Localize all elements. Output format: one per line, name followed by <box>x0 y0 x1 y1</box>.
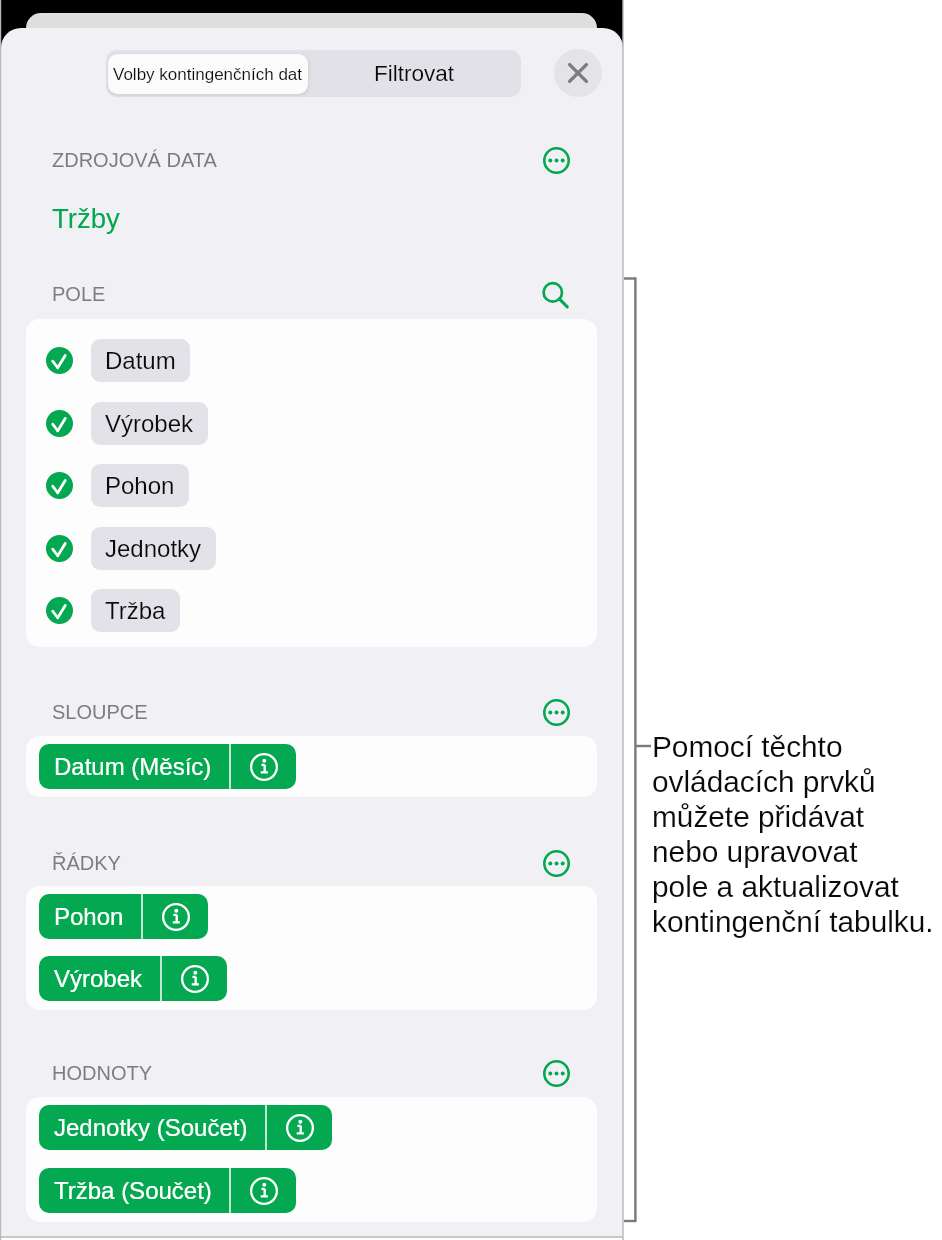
staticText: Pomocí těchto ovládacích prvků můžete př… <box>652 729 934 939</box>
staticText: Pohon <box>54 903 124 930</box>
button[interactable]: Výrobek <box>26 400 597 446</box>
staticText: Výrobek <box>105 410 194 437</box>
button[interactable]: Pohon <box>39 894 208 939</box>
button[interactable]: More options <box>532 839 580 887</box>
button[interactable]: Volby kontingenčních dat <box>108 54 308 94</box>
button[interactable]: Jednotky <box>26 525 597 571</box>
staticText: Tržba (Součet) <box>54 1177 212 1204</box>
button[interactable]: More options <box>532 688 580 736</box>
button[interactable]: Jednotky (Součet) <box>39 1105 332 1150</box>
staticText: Jednotky (Součet) <box>54 1114 248 1141</box>
staticText: SLOUPCE <box>52 701 148 723</box>
staticText: Výrobek <box>54 965 143 992</box>
other: Info <box>231 1168 296 1213</box>
button[interactable]: Datum <box>26 337 597 383</box>
button[interactable]: Tržba <box>26 587 597 633</box>
button[interactable]: Close <box>554 49 602 97</box>
staticText: Jednotky <box>105 535 202 562</box>
other: Info <box>267 1105 332 1150</box>
staticText: Tržby <box>52 203 120 234</box>
button[interactable]: More options <box>532 1049 580 1097</box>
button[interactable]: Datum (Měsíc) <box>39 744 296 789</box>
button[interactable]: Filtrovat <box>308 50 521 97</box>
staticText: Tržba <box>105 597 166 624</box>
staticText: POLE <box>52 283 106 305</box>
other: Info <box>143 894 208 939</box>
other: Info <box>162 956 227 1001</box>
staticText: HODNOTY <box>52 1062 152 1084</box>
staticText: ŘÁDKY <box>52 852 121 874</box>
button[interactable]: Search <box>531 271 579 319</box>
staticText: Pohon <box>105 472 175 499</box>
staticText: Datum (Měsíc) <box>54 753 212 780</box>
staticText: ZDROJOVÁ DATA <box>52 149 217 171</box>
staticText: Filtrovat <box>374 61 455 86</box>
button[interactable]: Výrobek <box>39 956 227 1001</box>
staticText: Volby kontingenčních dat <box>113 65 303 84</box>
staticText: Datum <box>105 347 176 374</box>
button[interactable]: Tržba (Součet) <box>39 1168 296 1213</box>
button[interactable]: Pohon <box>26 462 597 508</box>
button[interactable]: More options <box>532 136 580 184</box>
other: Info <box>231 744 296 789</box>
